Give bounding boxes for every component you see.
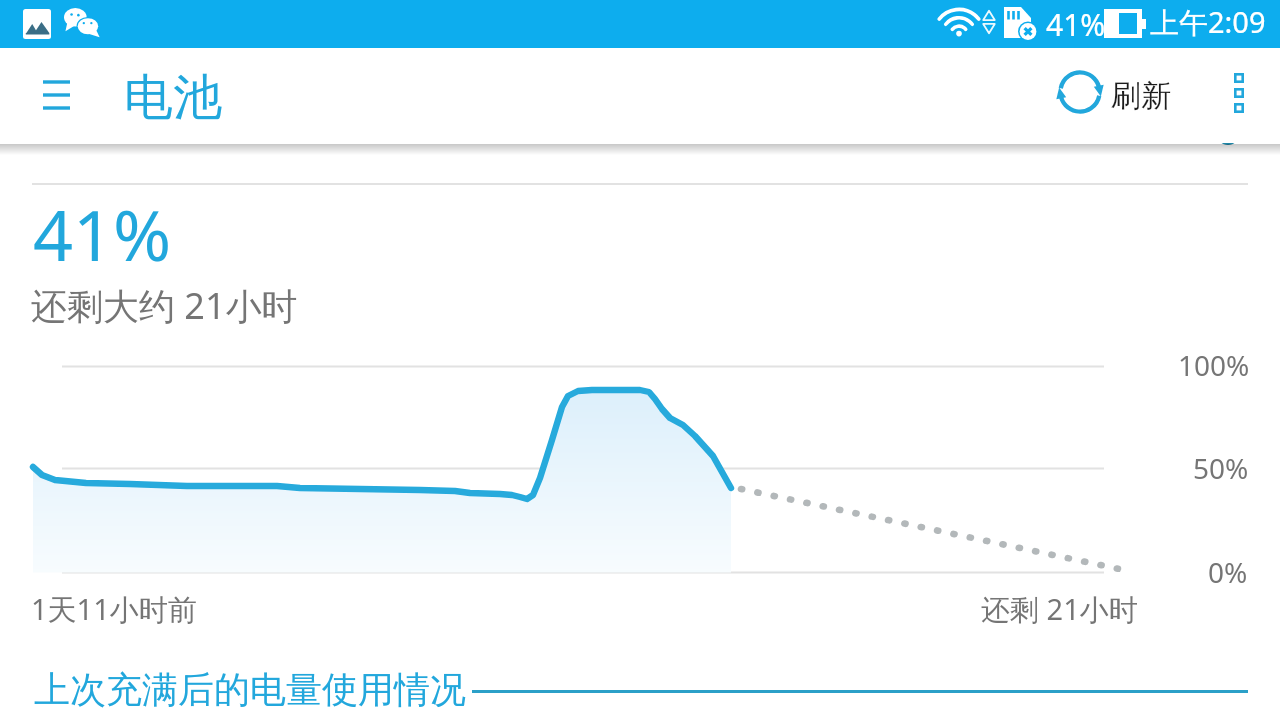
staticText: 41% bbox=[33, 186, 172, 281]
button[interactable]: More options bbox=[1214, 68, 1264, 118]
staticText: 刷新 bbox=[1111, 77, 1171, 115]
staticText: 0% bbox=[1208, 553, 1248, 591]
staticText: 100% bbox=[1178, 346, 1250, 384]
button[interactable]: Navigation menu bbox=[30, 69, 82, 121]
staticText: 电池 bbox=[124, 67, 222, 129]
staticText: 还剩大约 21小时 bbox=[31, 281, 298, 330]
button[interactable]: 刷新 bbox=[1046, 58, 1178, 126]
button[interactable]: 上次充满后的电量使用情况 bbox=[34, 667, 466, 712]
staticText: 上午2:09 bbox=[1150, 2, 1266, 42]
staticText: 50% bbox=[1193, 449, 1249, 487]
staticText: 41% bbox=[1046, 4, 1106, 45]
staticText: 1天11小时前 bbox=[31, 589, 197, 629]
staticText: 还剩 21小时 bbox=[981, 589, 1138, 629]
